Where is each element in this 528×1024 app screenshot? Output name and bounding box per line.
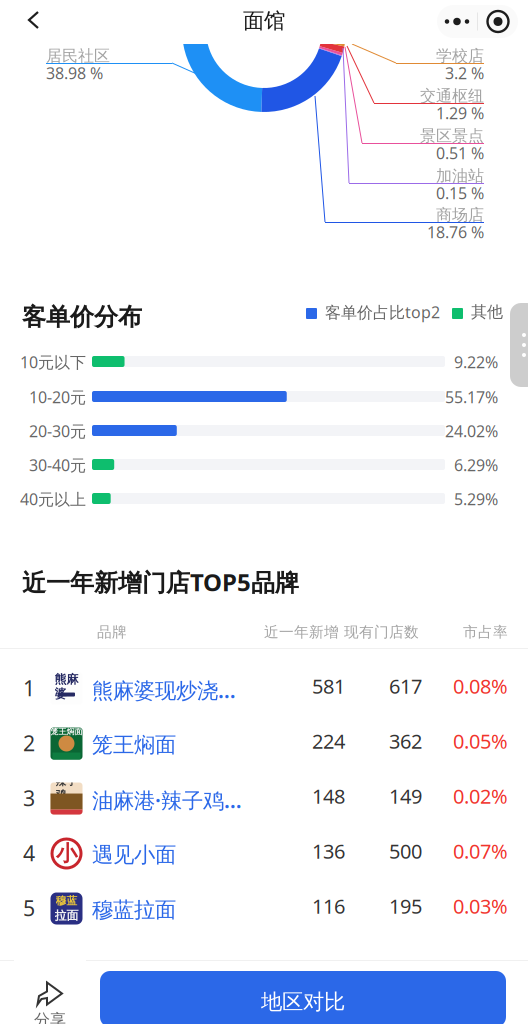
- button[interactable]: 1: [0, 661, 528, 716]
- staticText: 笼王焖面: [92, 732, 176, 758]
- staticText: 148: [312, 783, 345, 809]
- staticText: 10元以下: [20, 351, 86, 373]
- staticText: 笼王焖面: [50, 727, 82, 736]
- button[interactable]: More: [437, 5, 477, 38]
- staticText: 加油站: [436, 166, 484, 186]
- staticText: 0.08%: [453, 673, 508, 699]
- staticText: 362: [389, 728, 422, 754]
- staticText: 10-20元: [29, 386, 86, 408]
- staticText: 客单价占比top2: [325, 301, 440, 323]
- staticText: 24.02%: [445, 420, 498, 442]
- staticText: 9.22%: [454, 351, 498, 373]
- staticText: 20-30元: [29, 420, 86, 442]
- staticText: 224: [312, 728, 345, 754]
- staticText: 拉面: [54, 908, 78, 923]
- button[interactable]: 2: [0, 716, 528, 771]
- staticText: 0.15 %: [436, 182, 484, 204]
- staticText: 4: [23, 839, 35, 867]
- staticText: 遇见小面: [92, 842, 176, 868]
- staticText: 辣子鸡: [55, 775, 77, 801]
- staticText: 55.17%: [445, 386, 498, 408]
- staticText: 500: [389, 838, 422, 864]
- staticText: 市占率: [463, 623, 508, 641]
- button[interactable]: 5: [0, 881, 528, 936]
- staticText: 穆蓝: [55, 894, 77, 907]
- staticText: 5: [23, 894, 35, 922]
- staticText: 近一年新增门店TOP5品牌: [22, 566, 299, 598]
- staticText: 1.29 %: [436, 102, 484, 124]
- staticText: 116: [312, 893, 345, 919]
- staticText: 近一年新增: [264, 623, 339, 641]
- staticText: 30-40元: [29, 454, 86, 476]
- staticText: 2: [23, 729, 35, 757]
- staticText: 3: [23, 784, 35, 812]
- staticText: 0.07%: [453, 838, 508, 864]
- staticText: 0.02%: [453, 783, 508, 809]
- staticText: 学校店: [436, 46, 484, 66]
- staticText: 面馆: [243, 8, 285, 34]
- button[interactable]: 4: [0, 826, 528, 881]
- staticText: 617: [389, 673, 422, 699]
- staticText: 1: [23, 674, 35, 702]
- button[interactable]: Close: [478, 5, 518, 38]
- staticText: 5.29%: [454, 488, 498, 510]
- staticText: 熊麻婆: [54, 672, 78, 701]
- button[interactable]: Back: [10, 0, 58, 40]
- staticText: 交通枢纽: [420, 86, 484, 106]
- staticText: 熊麻婆现炒浇…: [92, 676, 236, 704]
- staticText: 149: [389, 783, 422, 809]
- staticText: 现有门店数: [344, 623, 419, 641]
- staticText: 0.51 %: [436, 142, 484, 164]
- staticText: 0.03%: [453, 893, 508, 919]
- staticText: 581: [312, 673, 345, 699]
- staticText: 小: [56, 840, 77, 867]
- staticText: 18.76 %: [427, 221, 484, 243]
- staticText: 6.29%: [454, 454, 498, 476]
- staticText: 居民社区: [46, 46, 110, 66]
- staticText: 38.98 %: [46, 62, 103, 84]
- staticText: 195: [389, 893, 422, 919]
- button[interactable]: 分享: [14, 960, 86, 1024]
- staticText: 商场店: [436, 205, 484, 225]
- staticText: 地区对比: [261, 989, 345, 1015]
- staticText: 品牌: [97, 623, 127, 641]
- staticText: 0.05%: [453, 728, 508, 754]
- staticText: 分享: [34, 1010, 66, 1024]
- button[interactable]: 3: [0, 771, 528, 826]
- staticText: 油麻港·辣子鸡…: [92, 786, 242, 814]
- staticText: 3.2 %: [445, 62, 484, 84]
- staticText: 穆蓝拉面: [92, 897, 176, 923]
- staticText: 其他: [471, 302, 503, 322]
- staticText: 40元以上: [20, 488, 86, 510]
- staticText: 136: [312, 838, 345, 864]
- staticText: 客单价分布: [22, 302, 142, 332]
- button[interactable]: 地区对比: [100, 971, 506, 1024]
- staticText: 景区景点: [420, 126, 484, 146]
